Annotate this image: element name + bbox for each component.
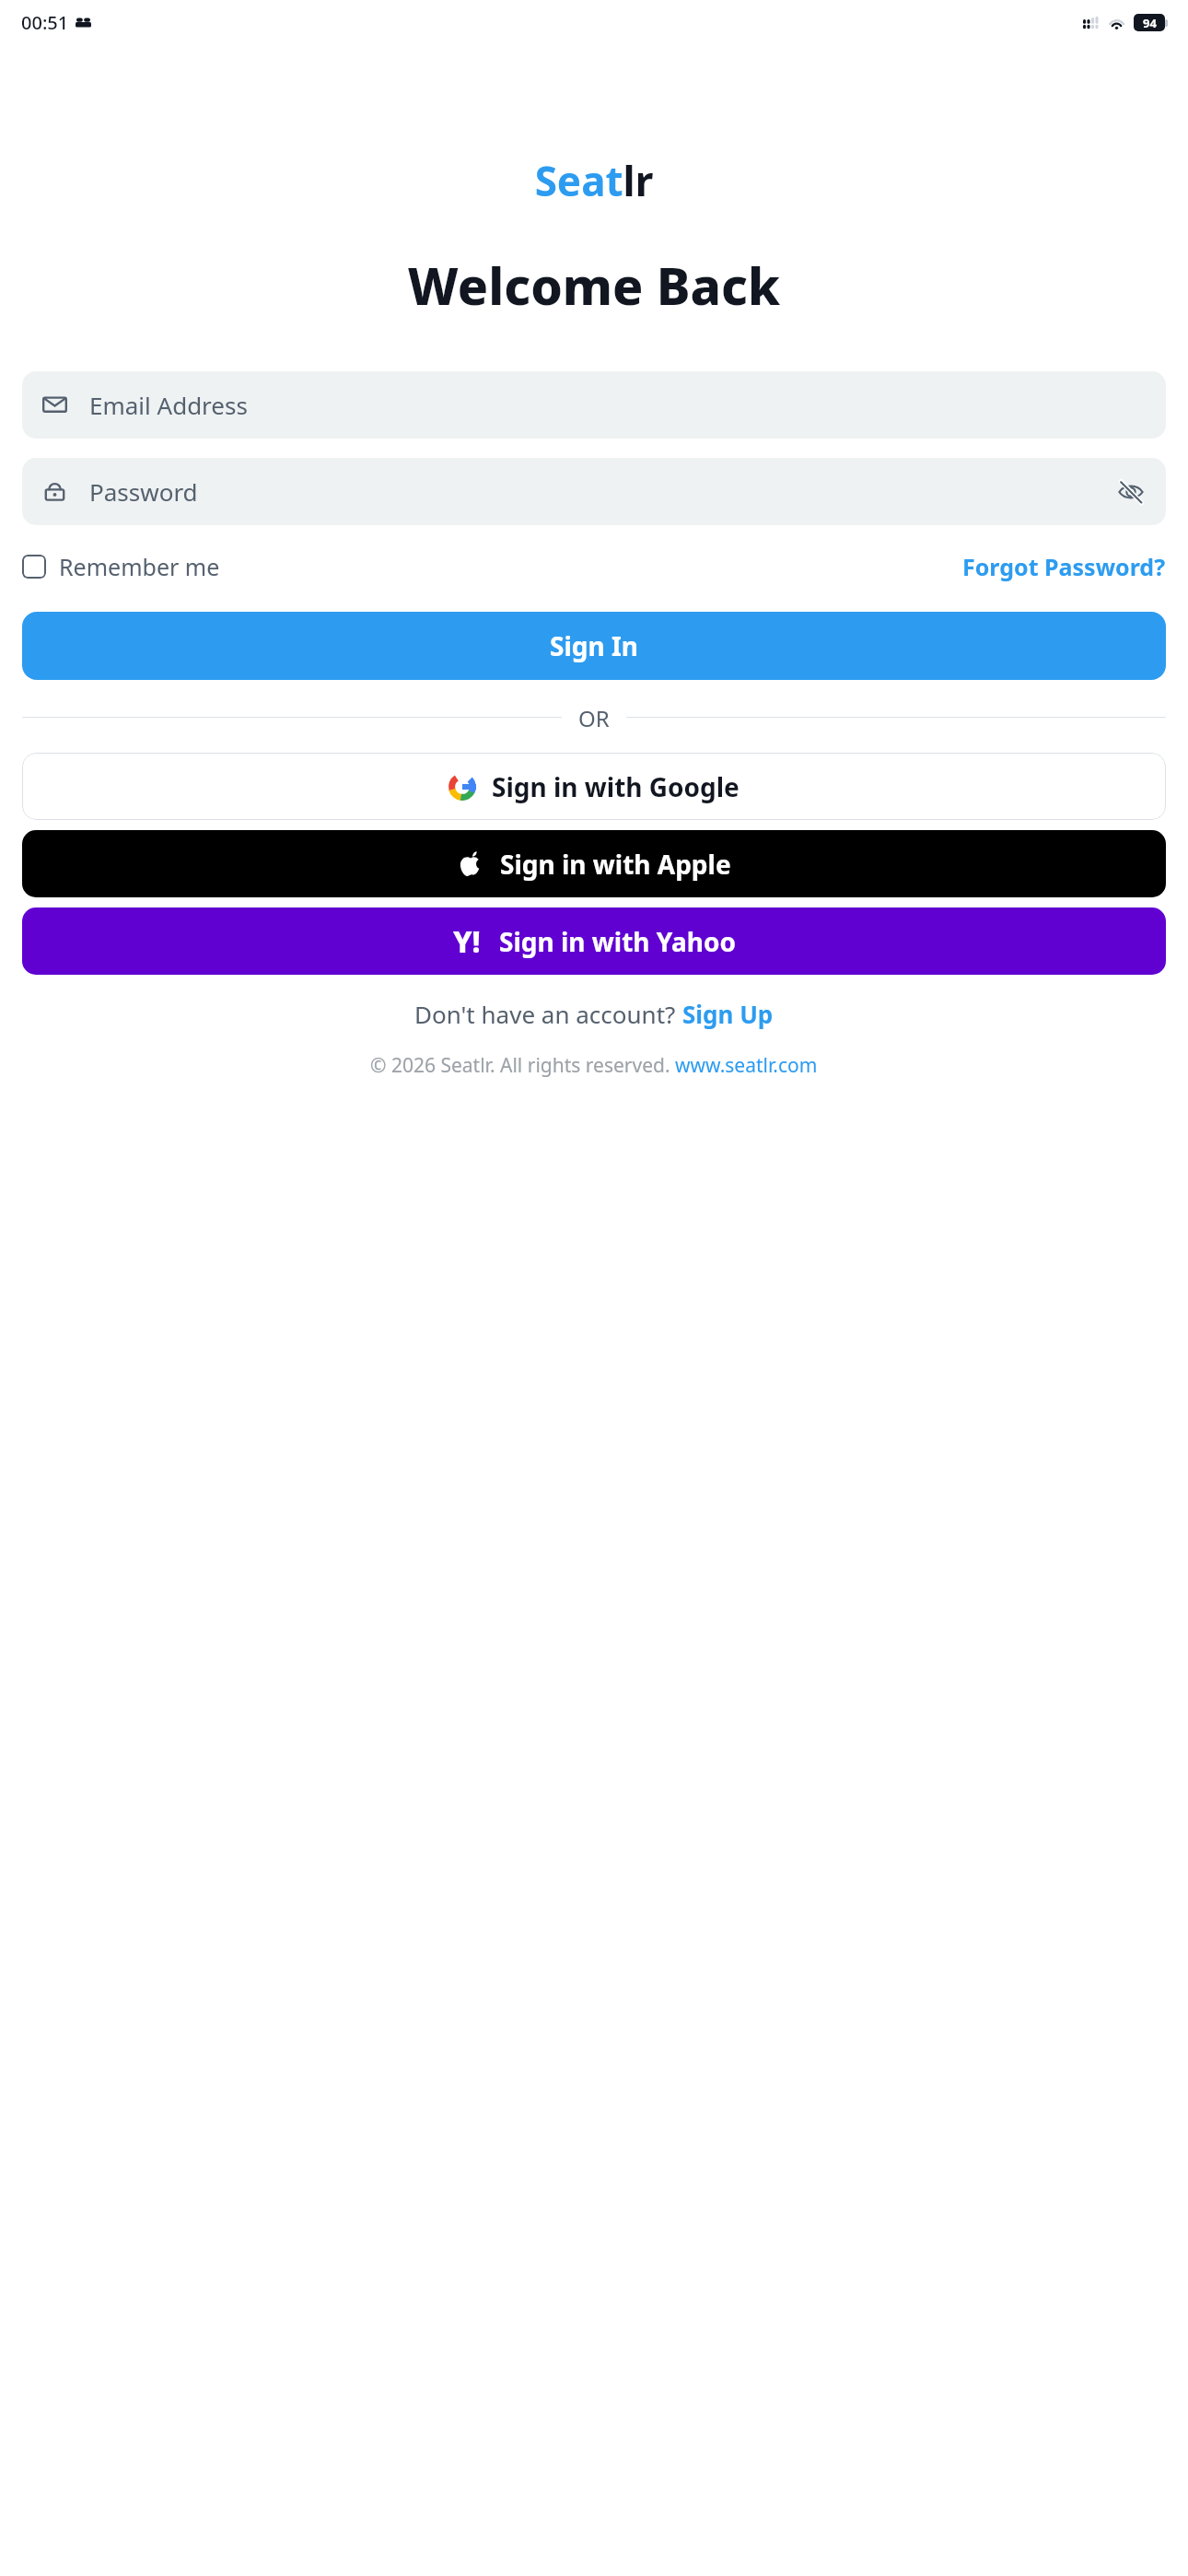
staticText: © 2026 Seatlr. All rights reserved. [370,1052,675,1079]
staticText: Sign in with Google [492,769,740,804]
button[interactable]: Sign in with Apple [22,830,1166,897]
button[interactable]: Don't have an account? [414,998,774,1030]
button[interactable]: Remember me [22,551,220,582]
button[interactable]: Y! [22,907,1166,975]
staticText: Welcome Back [0,251,1188,320]
staticText: Y! [453,921,481,962]
staticText: www.seatlr.com [675,1052,818,1079]
button[interactable]: Email Address [22,371,1166,439]
staticText: Remember me [59,551,220,582]
staticText: 94 [1143,15,1157,31]
staticText: Don't have an account? [414,998,682,1030]
button[interactable]: Forgot Password? [962,551,1166,582]
staticText: Sign Up [682,998,774,1030]
button[interactable]: www.seatlr.com [675,1052,818,1079]
staticText: Forgot Password? [962,551,1166,582]
button[interactable]: Sign in with Google [22,753,1166,820]
staticText: OR [578,703,610,731]
staticText: Email Address [89,389,248,421]
staticText: Password [89,475,198,508]
staticText: 00:51 [21,10,69,35]
staticText: Sign in with Yahoo [499,924,736,959]
staticText: Sign in with Apple [500,847,731,882]
button[interactable]: Password [22,458,1166,525]
button[interactable]: Sign In [22,612,1166,680]
button[interactable]: Show password [1116,477,1146,507]
staticText: Seatlr [0,153,1188,208]
staticText: Sign In [550,628,639,663]
